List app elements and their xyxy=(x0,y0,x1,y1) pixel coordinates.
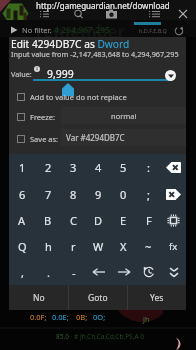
staticText: X xyxy=(120,239,127,254)
staticText: 8 xyxy=(70,187,77,202)
staticText: 3 xyxy=(70,160,77,175)
staticText: B xyxy=(44,213,52,228)
button[interactable]: 2 xyxy=(35,154,61,181)
button[interactable]: 9 xyxy=(86,181,111,207)
staticText: h xyxy=(45,239,52,254)
staticText: Goto xyxy=(88,292,108,304)
staticText: 85.0 xyxy=(56,332,69,341)
button[interactable]: Move right xyxy=(111,259,136,285)
other: Move right xyxy=(118,268,130,276)
button[interactable]: B xyxy=(35,207,61,233)
staticText: Save as: xyxy=(30,134,59,144)
button[interactable]: Add to value do not replace xyxy=(9,89,186,105)
staticText: Input value from -2,147,483,648 to 4,294… xyxy=(11,49,179,59)
button[interactable]: r xyxy=(61,233,86,259)
staticText: 0.0E; xyxy=(52,312,69,322)
staticText: normal xyxy=(111,111,137,121)
staticText: # Jh,Ch,Ca,Cd,Cb,PS,A 0 xyxy=(74,332,144,341)
staticText: http://gameguardian.net/download xyxy=(36,0,170,11)
staticText: remember xyxy=(36,20,126,43)
other: Hide keyboard xyxy=(169,267,179,278)
button[interactable]: C xyxy=(61,207,86,233)
staticText: 9,999 xyxy=(47,67,74,81)
staticText: : xyxy=(147,160,150,175)
button[interactable]: Var #4294DB7C xyxy=(61,129,186,146)
button[interactable]: F xyxy=(136,207,161,233)
other: Delete xyxy=(166,189,181,200)
button[interactable]: Show value options xyxy=(165,70,176,81)
button[interactable]: 8 xyxy=(61,181,86,207)
button[interactable]: Delete xyxy=(161,181,186,207)
button[interactable]: Q xyxy=(9,233,35,259)
button[interactable]: 5 xyxy=(111,154,136,181)
staticText: h,D,F,E,B,Q xyxy=(139,27,167,34)
staticText: , xyxy=(21,265,24,280)
other: Move left xyxy=(93,268,105,276)
button[interactable]: 3 xyxy=(61,154,86,181)
button[interactable]: A xyxy=(9,207,35,233)
button[interactable]: No xyxy=(9,285,68,310)
button[interactable]: Goto xyxy=(69,285,127,310)
button[interactable]: E xyxy=(111,207,136,233)
other: Backspace xyxy=(166,162,181,173)
staticText: D xyxy=(94,213,103,228)
staticText: A xyxy=(18,213,26,228)
staticText: 9 xyxy=(95,187,102,202)
staticText: . xyxy=(47,265,50,280)
staticText: 5 xyxy=(120,160,127,175)
button[interactable]: X xyxy=(111,233,136,259)
staticText: Value: xyxy=(11,69,32,79)
other: History xyxy=(143,266,155,278)
button[interactable]: Memory xyxy=(161,207,186,233)
staticText: No xyxy=(33,292,45,304)
staticText: No filter. xyxy=(22,25,52,35)
button[interactable]: ~ xyxy=(136,233,161,259)
button[interactable]: fx xyxy=(161,233,186,259)
staticText: E xyxy=(120,213,127,228)
staticText: 0.0F; xyxy=(30,312,47,322)
staticText: r xyxy=(71,239,76,254)
button[interactable]: : xyxy=(136,154,161,181)
staticText: fx xyxy=(169,240,178,253)
staticText: Yes xyxy=(150,292,164,304)
button[interactable]: Hide keyboard xyxy=(161,259,186,285)
button[interactable]: . xyxy=(35,259,61,285)
staticText: Freeze: xyxy=(30,112,55,122)
staticText: 0 xyxy=(120,187,127,202)
staticText: W xyxy=(93,239,104,254)
button[interactable]: ; xyxy=(136,181,161,207)
button[interactable]: Yes xyxy=(128,285,186,310)
staticText: ~ xyxy=(145,239,152,254)
staticText: Edit 4294DB7C as Dword xyxy=(11,37,130,51)
button[interactable]: normal xyxy=(61,107,186,124)
button[interactable]: h xyxy=(35,233,61,259)
button[interactable]: D xyxy=(86,207,111,233)
staticText: Q xyxy=(18,239,27,254)
staticText: 7 xyxy=(45,187,52,202)
staticText: Jh xyxy=(143,315,150,325)
button[interactable]: Move left xyxy=(86,259,111,285)
button[interactable]: 6 xyxy=(9,181,35,207)
button[interactable]: W xyxy=(86,233,111,259)
staticText: ; xyxy=(147,187,150,202)
button[interactable]: Backspace xyxy=(161,154,186,181)
other: Memory xyxy=(167,214,180,227)
staticText: 0B; xyxy=(76,312,88,322)
button[interactable]: History xyxy=(136,259,161,285)
button[interactable]: , xyxy=(9,259,35,285)
button[interactable]: 0 xyxy=(111,181,136,207)
button[interactable]: - xyxy=(61,259,86,285)
staticText: 6 xyxy=(19,187,26,202)
button[interactable]: 7 xyxy=(35,181,61,207)
staticText: 2 xyxy=(45,160,52,175)
staticText: Var #4294DB7C xyxy=(66,132,125,143)
button[interactable]: 4 xyxy=(86,154,111,181)
staticText: Add to value do not replace xyxy=(30,92,127,102)
staticText: C xyxy=(70,213,77,228)
staticText: 1 xyxy=(19,160,26,175)
button[interactable]: 1 xyxy=(9,154,35,181)
button[interactable]: Save as: xyxy=(9,131,186,147)
staticText: F xyxy=(146,213,152,228)
button[interactable]: Freeze: xyxy=(9,109,186,125)
staticText: 0O; xyxy=(93,312,106,322)
